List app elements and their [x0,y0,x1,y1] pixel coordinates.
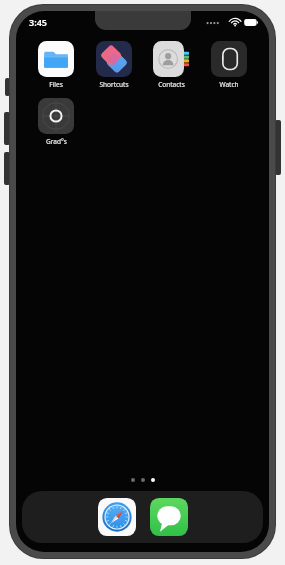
button[interactable]: Contacts [146,41,196,89]
button[interactable]: Messages [150,498,188,536]
button[interactable]: Watch [204,41,254,89]
staticText: 3:45 [29,16,47,28]
button[interactable]: Files [31,41,81,89]
button[interactable]: Grad°s [31,98,81,146]
button[interactable]: Safari [98,498,136,536]
staticText: Contacts [158,80,185,89]
button[interactable]: Shortcuts [89,41,139,89]
staticText: Grad°s [46,137,67,146]
staticText: Files [49,80,63,89]
staticText: Watch [219,80,239,89]
staticText: Shortcuts [99,80,129,89]
